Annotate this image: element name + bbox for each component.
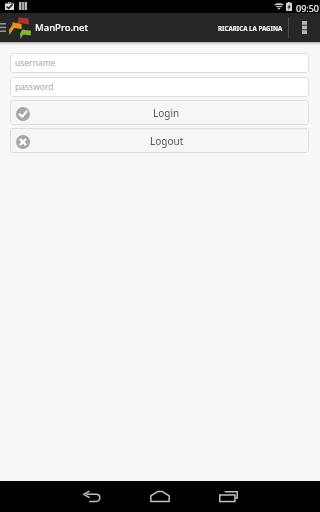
button[interactable]: username xyxy=(10,53,309,73)
button[interactable]: More options xyxy=(289,13,320,42)
staticText: password xyxy=(15,81,54,93)
button[interactable]: Logout xyxy=(10,128,309,153)
button[interactable]: Login xyxy=(10,100,309,125)
button[interactable]: Back xyxy=(58,481,126,512)
button[interactable]: password xyxy=(10,77,309,97)
button[interactable]: Recent apps xyxy=(194,481,262,512)
staticText: Login xyxy=(153,106,180,120)
staticText: username xyxy=(15,57,56,69)
staticText: ManPro.net xyxy=(35,21,89,34)
staticText: RICARICA LA PAGINA xyxy=(218,24,283,32)
button[interactable]: RICARICA LA PAGINA xyxy=(213,13,288,42)
button[interactable]: Home xyxy=(126,481,194,512)
staticText: 09:50 xyxy=(296,2,320,14)
button[interactable]: Open navigation drawer xyxy=(0,13,6,42)
staticText: Logout xyxy=(150,134,184,148)
